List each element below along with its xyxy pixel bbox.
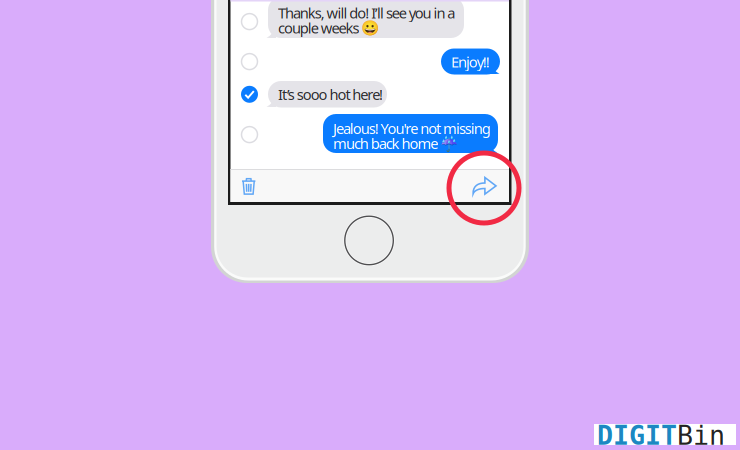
- staticText: Bin: [677, 420, 725, 450]
- staticText: Thanks, will do! I’ll see you in a: [278, 3, 455, 22]
- button[interactable]: Select message: [234, 120, 264, 150]
- staticText: DIGIT: [597, 420, 677, 450]
- button[interactable]: Select message: [234, 7, 264, 37]
- button[interactable]: Select message: [234, 47, 264, 77]
- staticText: couple weeks 😀: [278, 18, 379, 37]
- staticText: Enjoy!!: [451, 52, 490, 71]
- button[interactable]: Forward: [460, 170, 508, 202]
- staticText: It’s sooo hot here!: [278, 84, 383, 104]
- button[interactable]: Delete: [232, 170, 266, 201]
- staticText: Jealous! You're not missing: [333, 118, 491, 138]
- button[interactable]: Deselect message: [234, 79, 264, 109]
- staticText: much back home ☔: [333, 133, 458, 153]
